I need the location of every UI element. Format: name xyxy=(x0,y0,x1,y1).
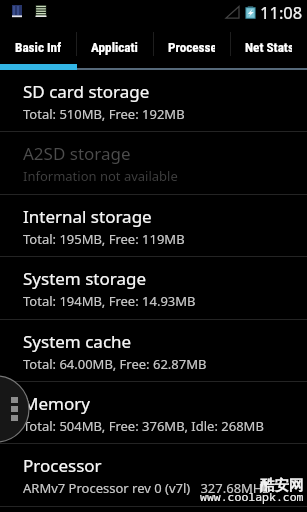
staticText: Application xyxy=(91,40,138,55)
button[interactable]: SD card storage xyxy=(0,70,307,132)
button[interactable]: System cache xyxy=(0,320,307,382)
button[interactable]: Internal storage xyxy=(0,195,307,257)
staticText: Memory xyxy=(23,392,90,415)
staticText: 11:08 xyxy=(260,1,303,23)
staticText: Total: 194MB, Free: 14.93MB xyxy=(23,292,196,310)
button[interactable]: Basic Info xyxy=(0,24,76,64)
staticText: Information not available xyxy=(23,167,178,185)
staticText: Total: 64.00MB, Free: 62.87MB xyxy=(23,355,207,373)
staticText: System cache xyxy=(23,330,132,353)
staticText: Processes xyxy=(168,40,215,55)
button[interactable]: Processor xyxy=(0,444,307,506)
staticText: Net Stats xyxy=(245,40,292,55)
staticText: SD card storage xyxy=(23,80,150,103)
staticText: System storage xyxy=(23,267,147,290)
staticText: www.coolapk.com xyxy=(200,489,304,505)
button[interactable]: A2SD storage xyxy=(0,132,307,194)
staticText: Total: 195MB, Free: 119MB xyxy=(23,230,185,248)
button[interactable]: Net Stats xyxy=(230,24,307,64)
staticText: Basic Info xyxy=(15,40,61,55)
button[interactable]: Memory xyxy=(0,382,307,444)
staticText: A2SD storage xyxy=(23,142,131,165)
button[interactable]: System storage xyxy=(0,257,307,319)
staticText: Internal storage xyxy=(23,205,152,228)
staticText: ARMv7 Processor rev 0 (v7l) 327.68MHz xyxy=(23,479,269,497)
staticText: Total: 504MB, Free: 376MB, Idle: 268MB xyxy=(23,417,264,435)
button[interactable]: Open menu xyxy=(0,375,30,443)
button[interactable]: Application xyxy=(76,24,153,64)
staticText: Processor xyxy=(23,454,102,477)
button[interactable]: Processes xyxy=(153,24,230,64)
staticText: Total: 510MB, Free: 192MB xyxy=(23,105,185,123)
staticText: 酷安网 xyxy=(260,476,304,494)
